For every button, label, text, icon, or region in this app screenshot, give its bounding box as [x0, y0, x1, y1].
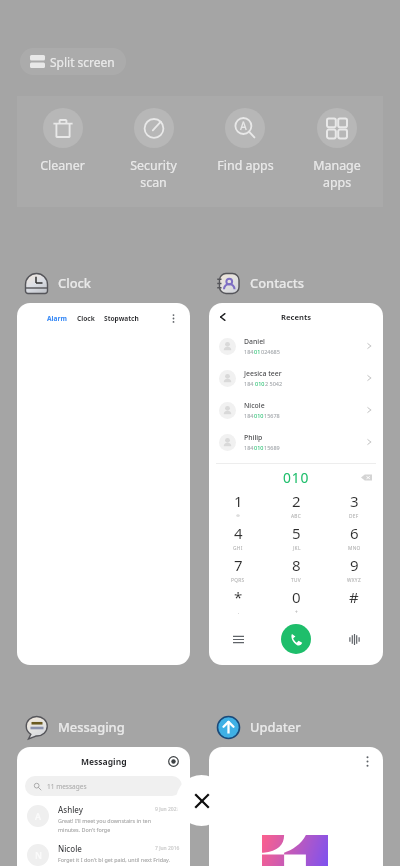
button[interactable]: Settings	[168, 756, 179, 767]
staticText: 184	[244, 380, 255, 387]
staticText: Clock	[77, 314, 95, 323]
staticText: 024685	[261, 348, 280, 355]
button[interactable]: Updater	[209, 712, 301, 742]
staticText: ABC	[291, 513, 302, 520]
button[interactable]: Cleaner	[17, 96, 108, 207]
button[interactable]: Clock	[17, 268, 92, 298]
staticText: Split screen	[50, 54, 115, 70]
staticText: Nicole	[58, 843, 82, 854]
staticText: Clock	[58, 274, 92, 292]
staticText: GHI	[233, 545, 243, 552]
staticText: 11 messages	[47, 782, 87, 791]
button[interactable]: Philip	[209, 426, 383, 458]
staticText: 8	[292, 555, 301, 575]
staticText: 184	[244, 348, 254, 355]
staticText: Contacts	[250, 274, 304, 292]
staticText: Jeesica teer	[244, 369, 282, 378]
staticText: 010	[283, 468, 310, 487]
staticText: A	[35, 810, 41, 822]
staticText: 6	[350, 523, 359, 543]
button[interactable]: *	[209, 586, 267, 618]
staticText: Philip	[244, 433, 263, 442]
staticText: 15689	[264, 444, 280, 451]
button[interactable]: More options	[209, 747, 383, 866]
button[interactable]: A	[17, 805, 190, 834]
staticText: Security scan	[130, 157, 177, 190]
button[interactable]: 5	[267, 522, 325, 554]
button[interactable]: Messaging	[17, 747, 190, 866]
staticText: N	[35, 849, 42, 861]
button[interactable]: 3	[325, 490, 383, 522]
staticText: Messaging	[58, 718, 125, 736]
button[interactable]: Jeesica teer	[209, 362, 383, 394]
staticText: 010	[254, 412, 264, 419]
button[interactable]: 9	[325, 554, 383, 586]
staticText: ∞	[236, 513, 241, 519]
button[interactable]: Nicole	[209, 394, 383, 426]
button[interactable]: Backspace	[361, 472, 372, 483]
staticText: 9	[350, 555, 359, 575]
staticText: 7	[234, 555, 243, 575]
staticText: #	[349, 587, 359, 607]
staticText: 184	[244, 412, 254, 419]
button[interactable]: 8	[267, 554, 325, 586]
staticText: 2 5042	[265, 380, 283, 387]
staticText: 010	[254, 444, 264, 451]
button[interactable]: 4	[209, 522, 267, 554]
staticText: 0	[292, 587, 301, 607]
button[interactable]: Security scan	[108, 96, 199, 207]
button[interactable]: Find apps	[199, 96, 291, 207]
staticText: .	[238, 609, 240, 616]
staticText: +	[295, 609, 299, 616]
staticText: Daniel	[244, 337, 265, 346]
button[interactable]: Messaging	[17, 712, 125, 742]
button[interactable]: More options	[362, 756, 373, 767]
button[interactable]: 1	[209, 490, 267, 522]
staticText: 184	[244, 444, 254, 451]
button[interactable]: 2	[267, 490, 325, 522]
button[interactable]: Back	[209, 303, 383, 665]
staticText: 2	[292, 491, 301, 511]
staticText: Ashley	[58, 804, 83, 815]
staticText: Recents	[281, 312, 312, 322]
staticText: MNO	[348, 545, 361, 552]
staticText: 1	[234, 491, 243, 511]
button[interactable]: Back	[217, 311, 229, 323]
staticText: Cleaner	[40, 157, 85, 174]
staticText: Nicole	[244, 401, 265, 410]
staticText: Forget it I don't bl get paid, until nex…	[58, 856, 171, 863]
button[interactable]: #	[325, 586, 383, 618]
staticText: WXYZ	[347, 577, 361, 584]
button[interactable]: N	[17, 844, 190, 866]
staticText: Manage apps	[313, 157, 361, 190]
button[interactable]: 7	[209, 554, 267, 586]
button[interactable]: Daniel	[209, 330, 383, 362]
staticText: *	[234, 587, 243, 607]
staticText: 9 Jun 2021	[155, 806, 180, 813]
staticText: 4	[234, 523, 243, 543]
button[interactable]: Voice	[325, 618, 383, 660]
button[interactable]: Manage apps	[291, 96, 383, 207]
staticText: Great! I'll meet you downstairs in ten m…	[58, 817, 151, 833]
staticText: 7 Jun 2016	[155, 845, 180, 852]
staticText: Updater	[250, 718, 301, 736]
staticText: DEF	[349, 513, 359, 520]
staticText: 5	[292, 523, 301, 543]
staticText: PQRS	[231, 577, 245, 584]
button[interactable]: Contacts	[209, 268, 304, 298]
button[interactable]: 11 messages	[25, 776, 182, 796]
staticText: Find apps	[217, 157, 274, 174]
staticText: 3	[350, 491, 359, 511]
button[interactable]: Menu	[209, 618, 267, 660]
staticText: 01	[254, 348, 261, 355]
staticText: Messaging	[81, 756, 127, 768]
button[interactable]: Call	[281, 624, 311, 654]
button[interactable]: 0	[267, 586, 325, 618]
button[interactable]: Alarm	[17, 303, 190, 665]
button[interactable]: Split screen	[20, 48, 126, 75]
staticText: Alarm	[47, 314, 67, 323]
staticText: JKL	[293, 545, 301, 552]
button[interactable]: 6	[325, 522, 383, 554]
button[interactable]: Close	[176, 775, 227, 826]
staticText: TUV	[291, 577, 301, 584]
